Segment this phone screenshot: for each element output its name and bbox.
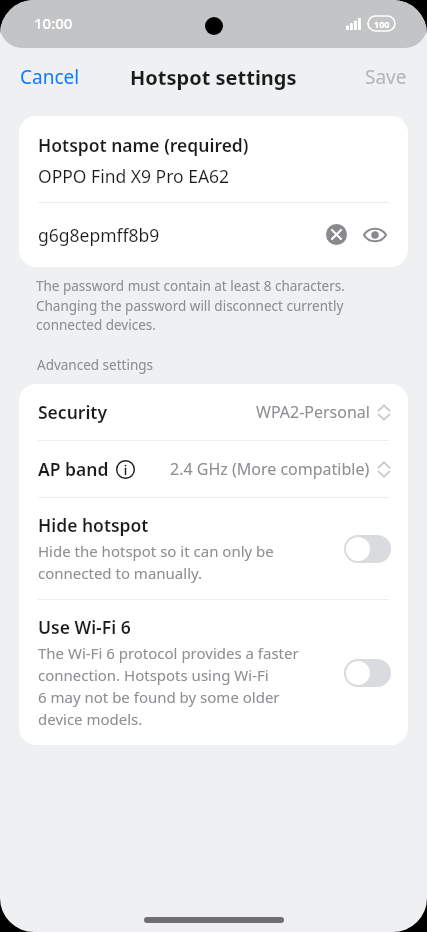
staticText: The password must contain at least 8 cha… — [36, 277, 391, 334]
button[interactable]: Save — [345, 54, 427, 100]
staticText: Hide hotspot — [38, 513, 149, 537]
staticText: AP band — [38, 457, 109, 481]
button[interactable]: Show password — [359, 223, 391, 247]
button[interactable]: Toggle — [344, 535, 391, 563]
button[interactable]: g6g8epmff8b9 — [19, 203, 408, 267]
button[interactable]: Hide hotspot — [19, 498, 408, 599]
staticText: Advanced settings — [37, 356, 154, 374]
button[interactable]: Toggle — [344, 659, 391, 687]
button[interactable]: Cancel — [0, 54, 100, 100]
button[interactable]: Hotspot name (required) — [19, 116, 408, 202]
button[interactable]: Clear password — [322, 220, 351, 249]
staticText: Hide the hotspot so it can only be conne… — [38, 541, 274, 584]
staticText: Hotspot settings — [130, 64, 297, 91]
staticText: 2.4 GHz (More compatible) — [170, 458, 370, 480]
staticText: Cancel — [20, 64, 80, 90]
staticText: 10:00 — [34, 13, 73, 33]
button[interactable]: AP band — [19, 441, 408, 497]
staticText: Use Wi-Fi 6 — [38, 615, 131, 639]
staticText: Save — [365, 64, 407, 90]
staticText: The Wi-Fi 6 protocol provides a faster c… — [38, 643, 299, 730]
staticText: g6g8epmff8b9 — [38, 223, 322, 247]
staticText: Security — [38, 400, 108, 424]
button[interactable]: Security — [19, 384, 408, 440]
button[interactable]: Use Wi-Fi 6 — [19, 600, 408, 745]
staticText: 100 — [374, 18, 390, 30]
staticText: Hotspot name (required) — [38, 133, 249, 157]
staticText: OPPO Find X9 Pro EA62 — [38, 164, 230, 188]
staticText: WPA2-Personal — [256, 401, 370, 423]
